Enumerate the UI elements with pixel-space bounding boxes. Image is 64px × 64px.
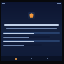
button[interactable] (4, 24, 59, 26)
button[interactable] (3, 32, 60, 34)
button[interactable] (3, 44, 42, 46)
button[interactable]: App icon (28, 12, 35, 19)
button[interactable]: Home tab (14, 57, 17, 60)
button[interactable]: Tab (30, 57, 33, 60)
button[interactable] (3, 36, 50, 38)
button[interactable]: Tab (46, 57, 49, 60)
button[interactable] (3, 40, 60, 42)
